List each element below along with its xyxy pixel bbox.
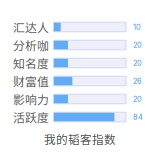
button[interactable]: 汇达人 [13,18,151,36]
button[interactable]: 影响力 [13,90,151,108]
staticText: 影响力 [13,90,49,108]
button[interactable]: 分析咖 [13,36,151,54]
staticText: 20 [133,41,142,49]
button[interactable]: 知名度 [13,54,151,72]
staticText: 26 [133,77,142,85]
button[interactable]: 财富值 [13,72,151,90]
staticText: 汇达人 [13,18,49,36]
button[interactable]: 活跃度 [13,108,151,126]
staticText: 活跃度 [13,108,49,126]
staticText: 84 [133,113,143,121]
staticText: 财富值 [13,72,49,90]
staticText: 20 [133,95,142,103]
staticText: 知名度 [13,54,49,72]
staticText: 我的韬客指数 [44,131,116,147]
staticText: 10 [133,23,141,31]
staticText: 20 [133,59,142,67]
staticText: 分析咖 [13,36,49,54]
